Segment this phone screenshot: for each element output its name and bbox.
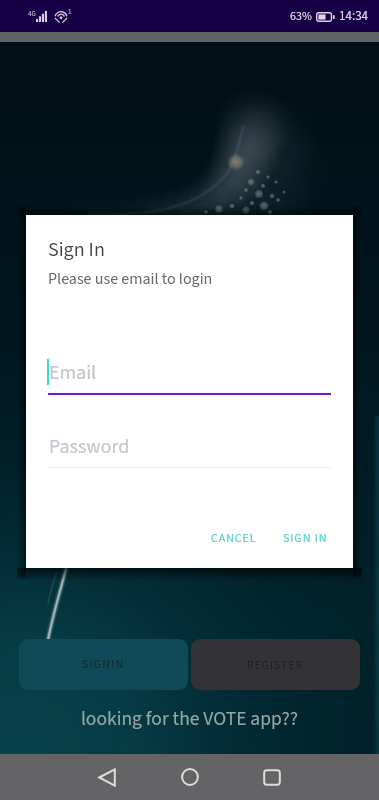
button[interactable]: Password xyxy=(26,427,353,469)
button[interactable]: REGISTER xyxy=(191,639,360,690)
button[interactable]: SIGN IN xyxy=(275,524,336,553)
staticText: Password xyxy=(49,433,130,461)
staticText: REGISTER xyxy=(247,657,304,673)
staticText: Please use email to login xyxy=(48,268,213,291)
staticText: 1 xyxy=(68,7,72,17)
button[interactable]: SIGNIN xyxy=(19,639,188,690)
staticText: Email xyxy=(49,359,97,387)
staticText: SIGN IN xyxy=(283,530,328,547)
staticText: Sign In xyxy=(48,236,105,264)
button[interactable]: Home xyxy=(169,756,211,798)
staticText: 14:34 xyxy=(339,7,369,26)
button[interactable]: Back xyxy=(86,756,128,798)
staticText: SIGNIN xyxy=(82,656,125,673)
staticText: looking for the VOTE app?? xyxy=(0,705,379,733)
button[interactable]: Recent apps xyxy=(251,756,293,798)
staticText: 63% xyxy=(290,8,312,25)
staticText: CANCEL xyxy=(211,530,257,547)
button[interactable]: CANCEL xyxy=(203,524,265,553)
staticText: 4G xyxy=(28,9,36,19)
button[interactable]: Email xyxy=(26,353,353,395)
